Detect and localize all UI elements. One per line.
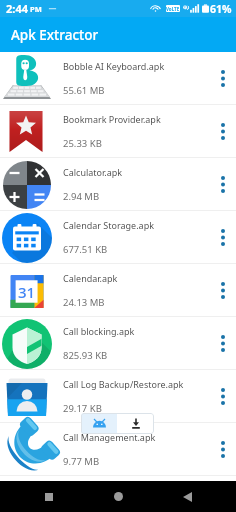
button[interactable]: Call Management.apk [0,423,236,476]
button[interactable]: Bobble AI Keyboard.apk [0,52,236,105]
staticText: 2.94 MB [63,190,100,203]
staticText: 677.51 KB [63,243,108,256]
button[interactable]: More options [209,423,236,476]
button[interactable]: More options [209,52,236,105]
staticText: 2:44 [6,1,28,16]
staticText: Bookmark Provider.apk [63,113,161,125]
staticText: 24.13 MB [63,296,105,309]
button[interactable]: Home [98,481,138,512]
staticText: Call blocking.apk [63,325,135,337]
staticText: Apk Extractor [11,26,99,44]
staticText: 9.77 MB [63,455,100,468]
button[interactable]: Bookmark Provider.apk [0,105,236,158]
staticText: Bobble AI Keyboard.apk [63,60,165,72]
staticText: Call Log Backup/Restore.apk [63,378,184,390]
staticText: 61% [210,2,232,16]
button[interactable]: 31 [0,264,236,317]
button[interactable]: Apk Extractor [0,17,236,52]
button[interactable]: More options [209,211,236,264]
button[interactable]: Back [167,481,207,512]
button[interactable]: More options [209,105,236,158]
button[interactable]: More options [209,158,236,211]
staticText: 31 [18,282,36,302]
staticText: 55.61 MB [63,84,105,97]
button[interactable]: Call blocking.apk [0,317,236,370]
button[interactable]: More options [209,317,236,370]
staticText: PM [30,4,42,14]
button[interactable]: Download [117,413,154,434]
staticText: 25.33 KB [63,137,102,150]
button[interactable]: Android [81,413,117,434]
staticText: 825.93 KB [63,349,108,362]
button[interactable]: Calculator.apk [0,158,236,211]
staticText: Calculator.apk [63,166,123,178]
button[interactable]: More options [209,370,236,423]
staticText: VoLTE [166,6,180,12]
button[interactable]: Call Log Backup/Restore.apk [0,370,236,423]
button[interactable]: More options [209,264,236,317]
button[interactable]: Calendar Storage.apk [0,211,236,264]
button[interactable]: Recent apps [29,481,69,512]
staticText: 29.17 KB [63,402,102,415]
staticText: Calendar Storage.apk [63,219,154,231]
staticText: Calendar.apk [63,272,118,284]
staticText: Call Management.apk [63,431,156,443]
